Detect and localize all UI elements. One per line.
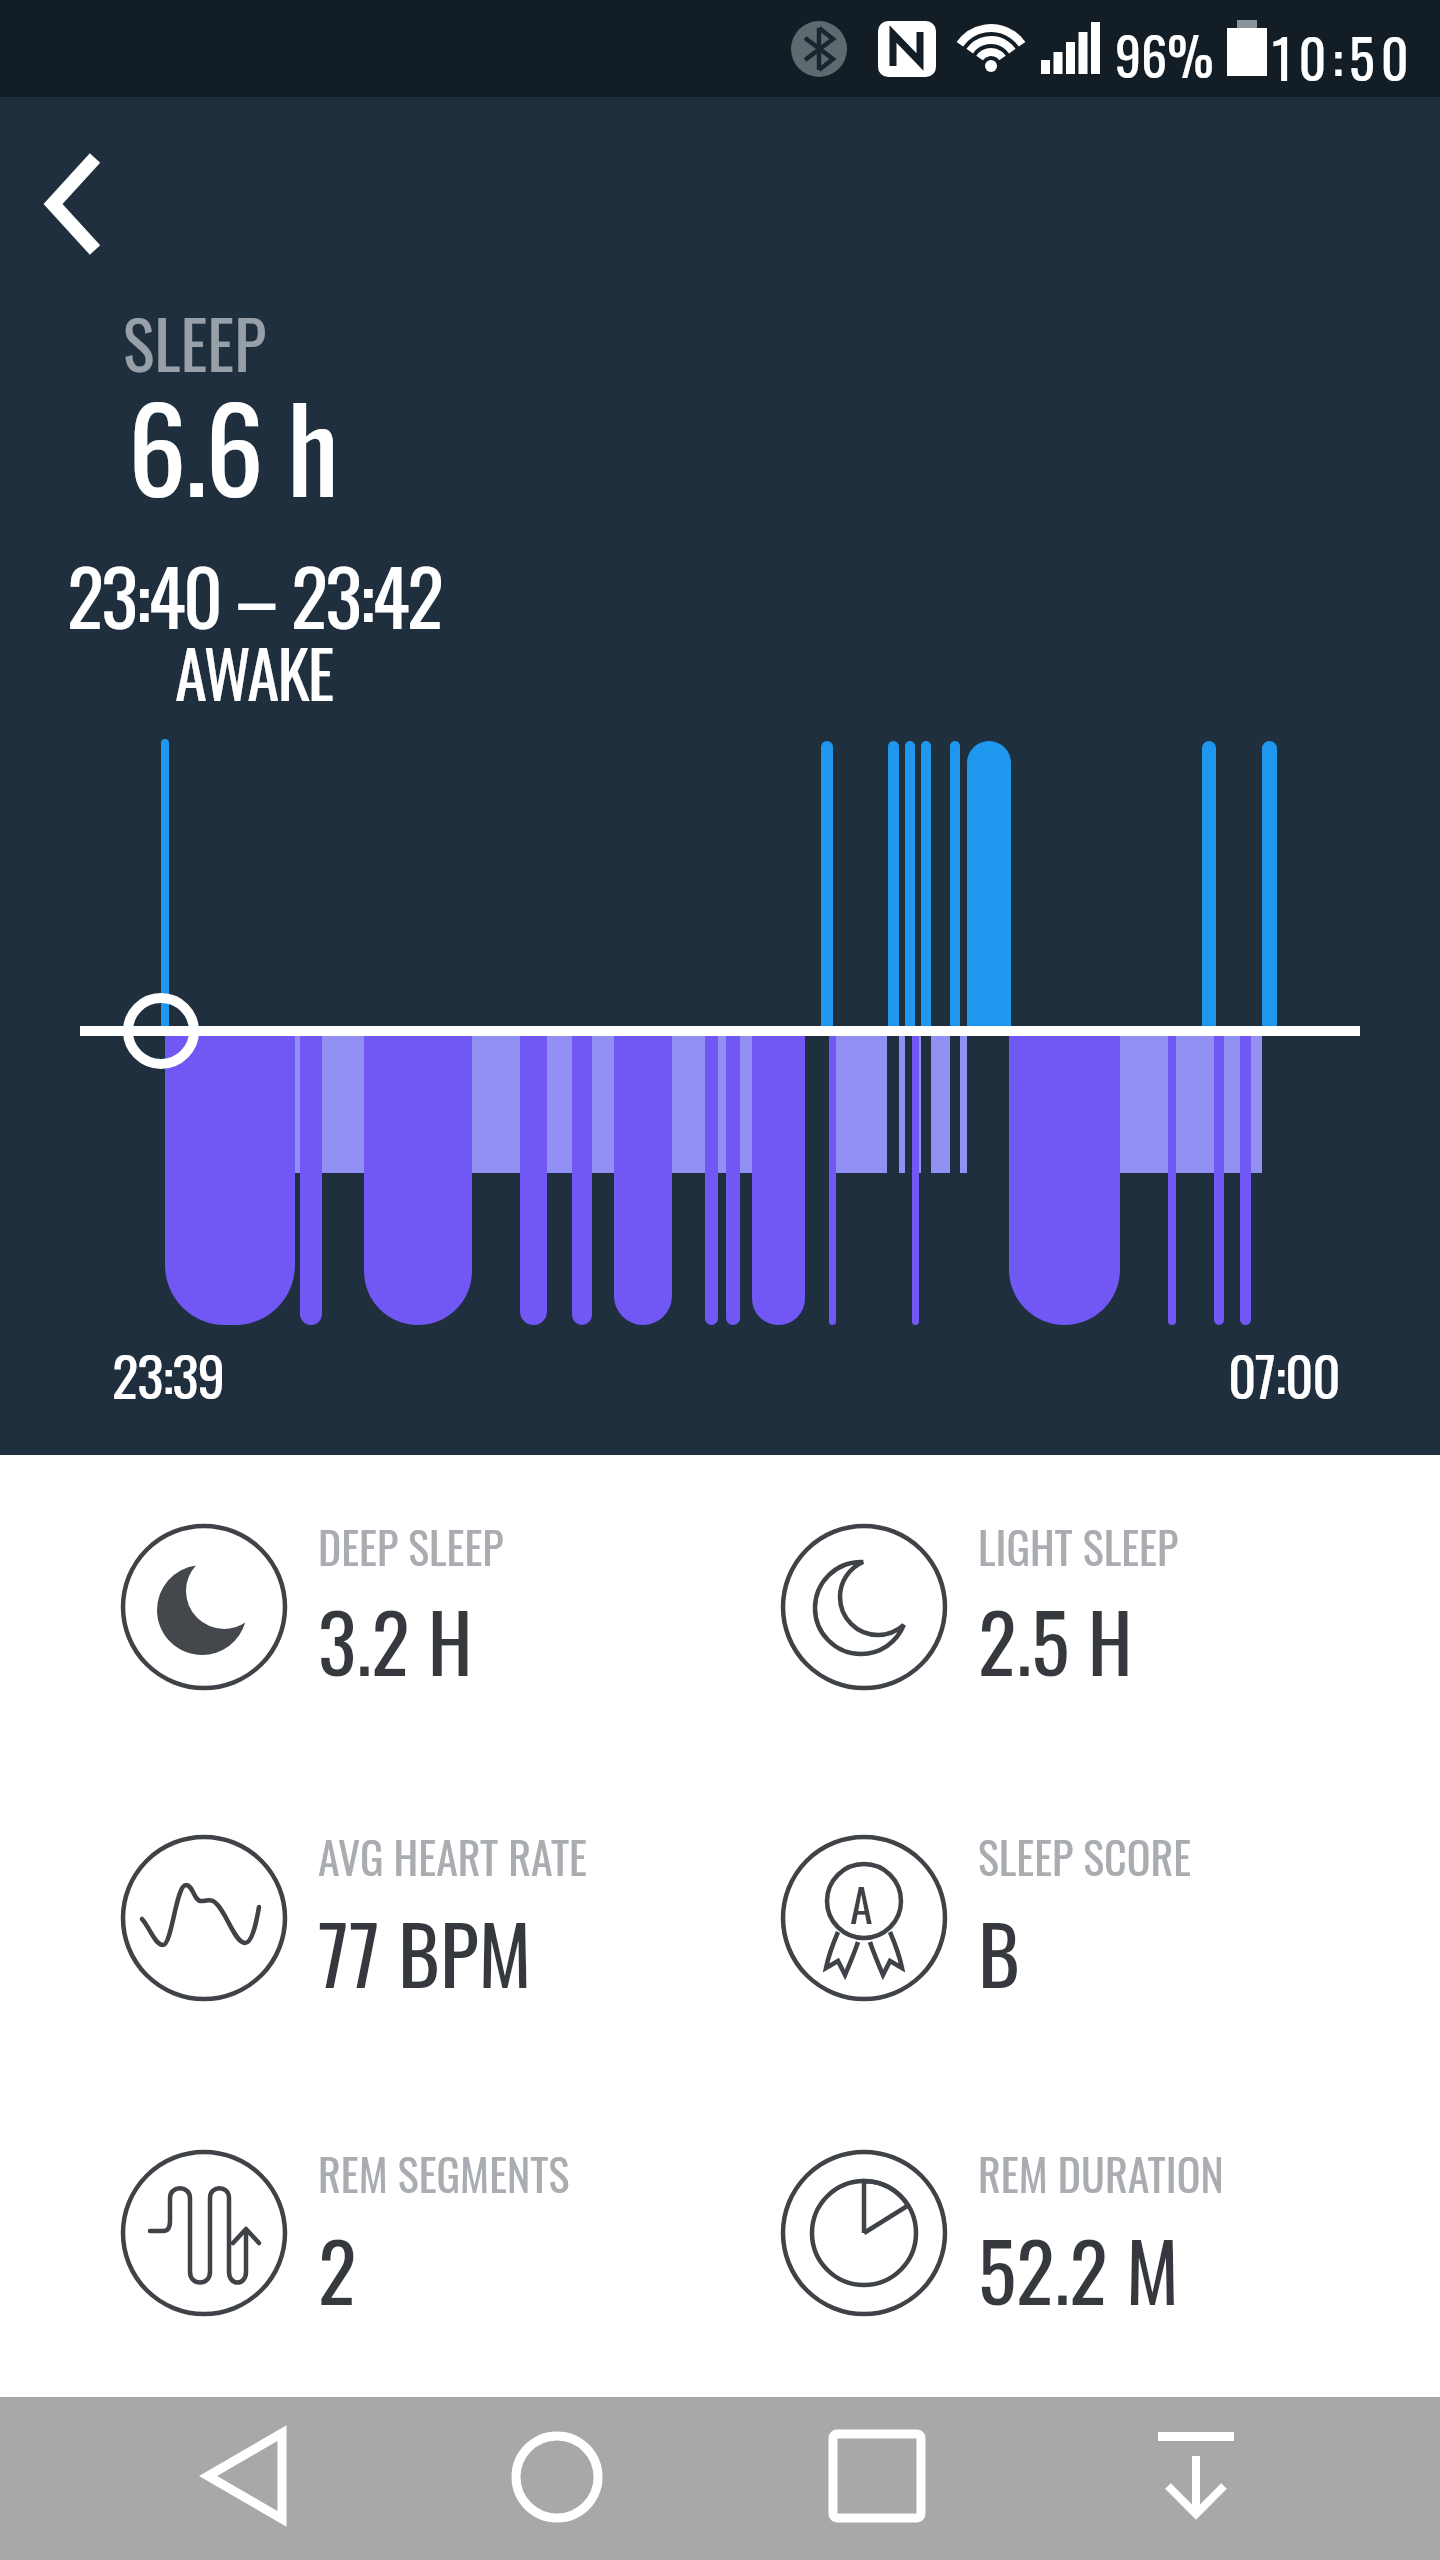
button[interactable] xyxy=(477,2400,637,2560)
staticText: AVG HEART RATE xyxy=(318,1824,588,1889)
staticText: REM DURATION xyxy=(978,2141,1224,2206)
button[interactable] xyxy=(110,1510,670,1700)
button[interactable] xyxy=(30,130,130,270)
button[interactable] xyxy=(770,1510,1330,1700)
staticText: 23:39 xyxy=(112,1333,225,1415)
staticText: REM SEGMENTS xyxy=(318,2141,570,2206)
staticText: A xyxy=(850,1869,873,1937)
staticText: 52.2 M xyxy=(978,2210,1179,2329)
staticText: 10:50 xyxy=(1272,17,1415,97)
button[interactable] xyxy=(110,1822,670,2012)
button[interactable] xyxy=(797,2400,957,2560)
staticText: LIGHT SLEEP xyxy=(978,1514,1179,1579)
staticText: 77 BPM xyxy=(318,1893,532,2012)
staticText: 2.5 H xyxy=(978,1581,1133,1700)
staticText: 23:40 – 23:42 xyxy=(67,537,442,651)
staticText: 2 xyxy=(318,2210,357,2329)
button[interactable] xyxy=(770,1822,1330,2012)
staticText: SLEEP SCORE xyxy=(978,1824,1192,1889)
staticText: 07:00 xyxy=(1228,1333,1340,1415)
staticText: 96% xyxy=(1115,16,1214,93)
staticText: 3.2 H xyxy=(318,1581,473,1700)
button[interactable] xyxy=(1116,2400,1276,2560)
staticText: AWAKE xyxy=(175,623,333,719)
staticText: DEEP SLEEP xyxy=(318,1514,504,1579)
staticText: SLEEP xyxy=(123,293,266,391)
button[interactable] xyxy=(110,2137,670,2327)
button[interactable] xyxy=(165,2400,325,2560)
staticText: B xyxy=(978,1893,1020,2012)
staticText: 6.6 h xyxy=(128,359,338,531)
button[interactable] xyxy=(770,2137,1330,2327)
